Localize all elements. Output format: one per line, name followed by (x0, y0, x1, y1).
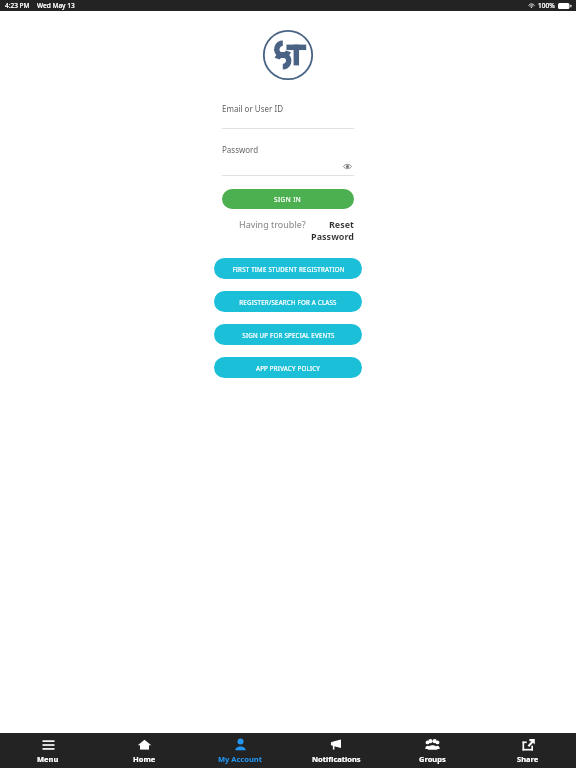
staticText: Password (222, 144, 259, 155)
staticText: Wed May 13 (37, 1, 75, 10)
staticText: My Account (218, 754, 262, 764)
staticText: FIRST TIME STUDENT REGISTRATION (232, 265, 345, 273)
staticText: Groups (419, 754, 446, 764)
staticText: REGISTER/SEARCH FOR A CLASS (239, 298, 337, 306)
button[interactable]: REGISTER/SEARCH FOR A CLASS (214, 291, 362, 312)
staticText: 100% (538, 1, 555, 10)
button[interactable]: FIRST TIME STUDENT REGISTRATION (214, 258, 362, 279)
button[interactable]: Groups (384, 733, 480, 768)
button[interactable]: SIGN UP FOR SPECIAL EVENTS (214, 324, 362, 345)
button[interactable]: My Account (192, 733, 288, 768)
button[interactable]: Notifications (288, 733, 384, 768)
button[interactable]: Menu (0, 733, 96, 768)
staticText: SIGN UP FOR SPECIAL EVENTS (242, 331, 335, 339)
button[interactable]: SIGN IN (222, 189, 354, 209)
staticText: Notifications (312, 754, 361, 764)
staticText: Email or User ID (222, 103, 283, 114)
staticText: Reset Password (309, 218, 354, 242)
staticText: Menu (37, 754, 59, 764)
button[interactable]: APP PRIVACY POLICY (214, 357, 362, 378)
staticText: APP PRIVACY POLICY (256, 364, 320, 372)
staticText: Home (133, 754, 156, 764)
staticText: Having trouble? (239, 218, 309, 230)
button[interactable]: Show password (340, 159, 354, 173)
staticText: Share (517, 754, 539, 764)
button[interactable]: Home (96, 733, 192, 768)
staticText: 4:23 PM (5, 1, 30, 10)
button[interactable]: Share (480, 733, 576, 768)
staticText: SIGN IN (274, 195, 302, 204)
